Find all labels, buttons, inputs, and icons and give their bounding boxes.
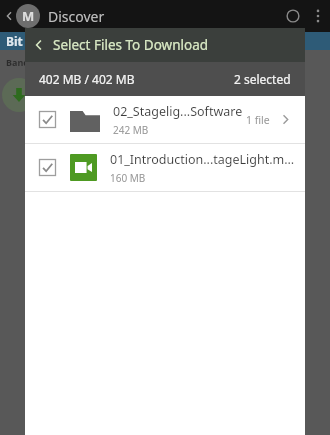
staticText: 402 MB / 402 MB bbox=[39, 71, 135, 87]
staticText: 2 selected bbox=[234, 71, 291, 87]
staticText: Band bbox=[6, 56, 29, 68]
staticText: 160 MB bbox=[110, 171, 146, 185]
button[interactable]: Toggle selection bbox=[39, 111, 56, 128]
button[interactable]: Toggle selection bbox=[25, 144, 305, 191]
button[interactable]: Download bbox=[2, 78, 36, 112]
staticText: 242 MB bbox=[113, 123, 149, 137]
button[interactable]: Toggle selection bbox=[25, 96, 305, 143]
staticText: 01_Introduction...tageLight.mp4 bbox=[110, 151, 295, 168]
button[interactable]: Toggle selection bbox=[39, 159, 56, 176]
button[interactable]: Back bbox=[25, 28, 305, 62]
staticText: Bit bbox=[6, 33, 23, 49]
staticText: M bbox=[22, 7, 35, 25]
button[interactable]: Back bbox=[25, 28, 53, 62]
staticText: 1 file bbox=[246, 113, 270, 127]
staticText: 02_Stagelig...Software bbox=[113, 103, 243, 120]
staticText: Select Files To Download bbox=[53, 36, 209, 54]
button[interactable]: 402 MB / 402 MB bbox=[39, 62, 291, 96]
staticText: Discover bbox=[48, 7, 105, 26]
